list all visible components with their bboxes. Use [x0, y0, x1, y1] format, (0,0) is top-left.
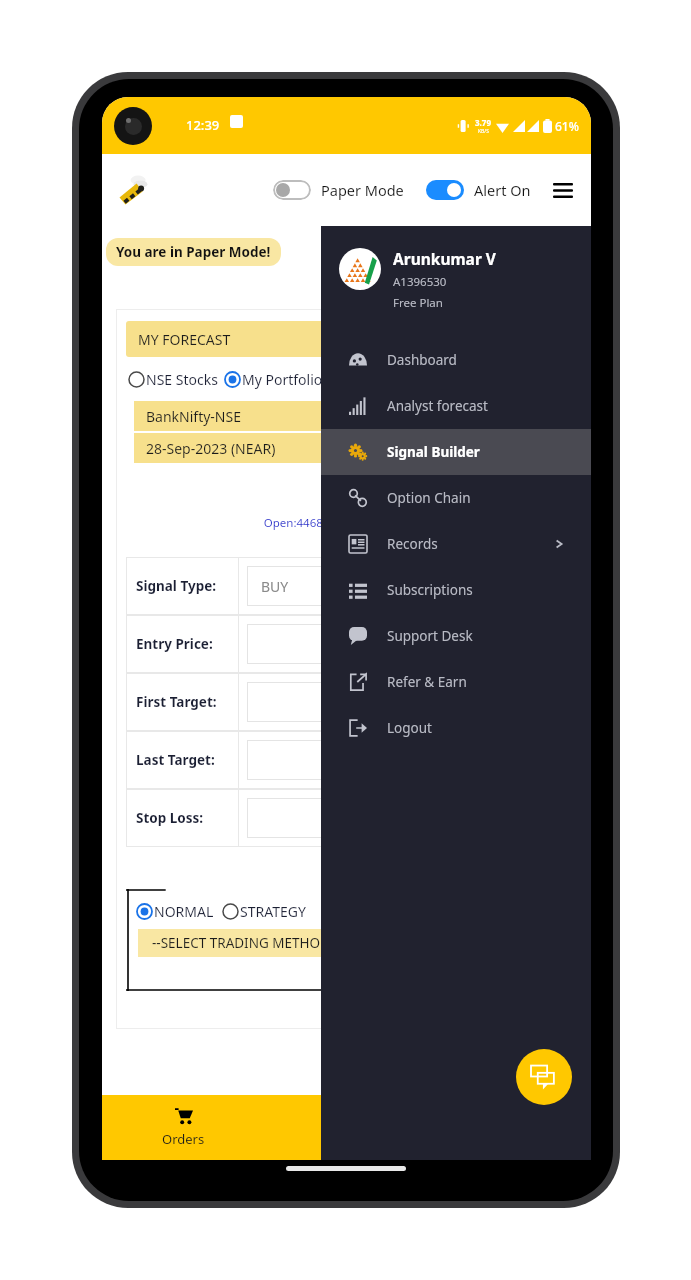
button[interactable]: Menu [547, 174, 579, 206]
button[interactable]: Chat support [516, 1049, 572, 1105]
button[interactable] [247, 682, 561, 722]
staticText: Stop Loss: [136, 809, 204, 827]
button[interactable]: Paper Mode toggle [271, 178, 313, 202]
staticText: Signal Type: [136, 577, 217, 595]
staticText: Entry Price: [136, 635, 213, 653]
staticText: BUY [261, 577, 289, 596]
staticText: MY FORECAST [138, 330, 231, 349]
button[interactable]: BankNifty-NSE [134, 401, 559, 431]
button[interactable] [134, 901, 154, 921]
staticText: Signal Builder [387, 443, 480, 461]
button[interactable]: BUY [247, 566, 561, 606]
button[interactable]: Subscriptions [321, 567, 591, 613]
staticText: Logout [387, 719, 432, 737]
button[interactable]: Alert toggle [424, 178, 466, 202]
staticText: Orders [162, 1130, 205, 1148]
button[interactable]: MY FORECAST [126, 321, 567, 357]
staticText: 28-Sep-2023 (NEAR) [146, 439, 276, 458]
button[interactable]: 28-Sep-2023 (NEAR) [134, 433, 559, 463]
staticText: You are in Paper Mode! [116, 243, 271, 261]
staticText: 61% [555, 118, 579, 134]
button[interactable] [220, 901, 240, 921]
staticText: Arunkumar V [393, 248, 496, 269]
button[interactable] [247, 624, 561, 664]
staticText: BankNifty-NSE [146, 407, 241, 426]
staticText: Option Chain [387, 489, 471, 507]
staticText: Support Desk [387, 627, 473, 645]
staticText: STRATEGY [240, 902, 306, 921]
staticText: NORMAL [154, 902, 214, 921]
staticText: SO [126, 857, 559, 883]
button[interactable]: Alert On [474, 180, 531, 200]
staticText: KB/S [478, 128, 489, 135]
button[interactable]: Nav item [428, 1095, 591, 1160]
staticText: A1396530 [393, 274, 447, 290]
button[interactable] [222, 369, 242, 389]
staticText: Open:44680.00 | High:44990.9 [126, 515, 567, 531]
staticText: NSE Stocks [146, 370, 218, 389]
button[interactable]: --SELECT TRADING METHOD-- [138, 929, 567, 957]
staticText: 3.79 [475, 117, 491, 128]
staticText: Free Plan [393, 295, 443, 311]
staticText: Data Live [126, 531, 563, 547]
button[interactable]: Support Desk [321, 613, 591, 659]
staticText: Records [387, 535, 438, 553]
staticText: --SELECT TRADING METHOD-- [152, 934, 339, 952]
staticText: BUILD DAY [102, 276, 577, 299]
button[interactable]: Orders [102, 1095, 265, 1160]
button[interactable]: Dashboard [321, 337, 591, 383]
button[interactable]: Logout [321, 705, 591, 751]
staticText: Subscriptions [387, 581, 473, 599]
button[interactable] [247, 798, 561, 838]
staticText: Last Target: [136, 751, 215, 769]
button[interactable]: Paper Mode [321, 180, 404, 200]
staticText: First Target: [136, 693, 217, 711]
button[interactable]: Analyst forecast [321, 383, 591, 429]
staticText: Analyst forecast [387, 397, 488, 415]
button[interactable]: P [265, 1095, 428, 1160]
button[interactable]: Option Chain [321, 475, 591, 521]
staticText: Refer & Earn [387, 673, 467, 691]
button[interactable]: Records [321, 521, 591, 567]
staticText: 12:39 [186, 116, 220, 134]
button[interactable]: Signal Builder [321, 429, 591, 475]
staticText: My Portfolio [242, 370, 323, 389]
button[interactable] [247, 740, 561, 780]
staticText: Dashboard [387, 351, 457, 369]
button[interactable] [126, 369, 146, 389]
button[interactable]: Refer & Earn [321, 659, 591, 705]
staticText: LTP: [126, 477, 561, 503]
